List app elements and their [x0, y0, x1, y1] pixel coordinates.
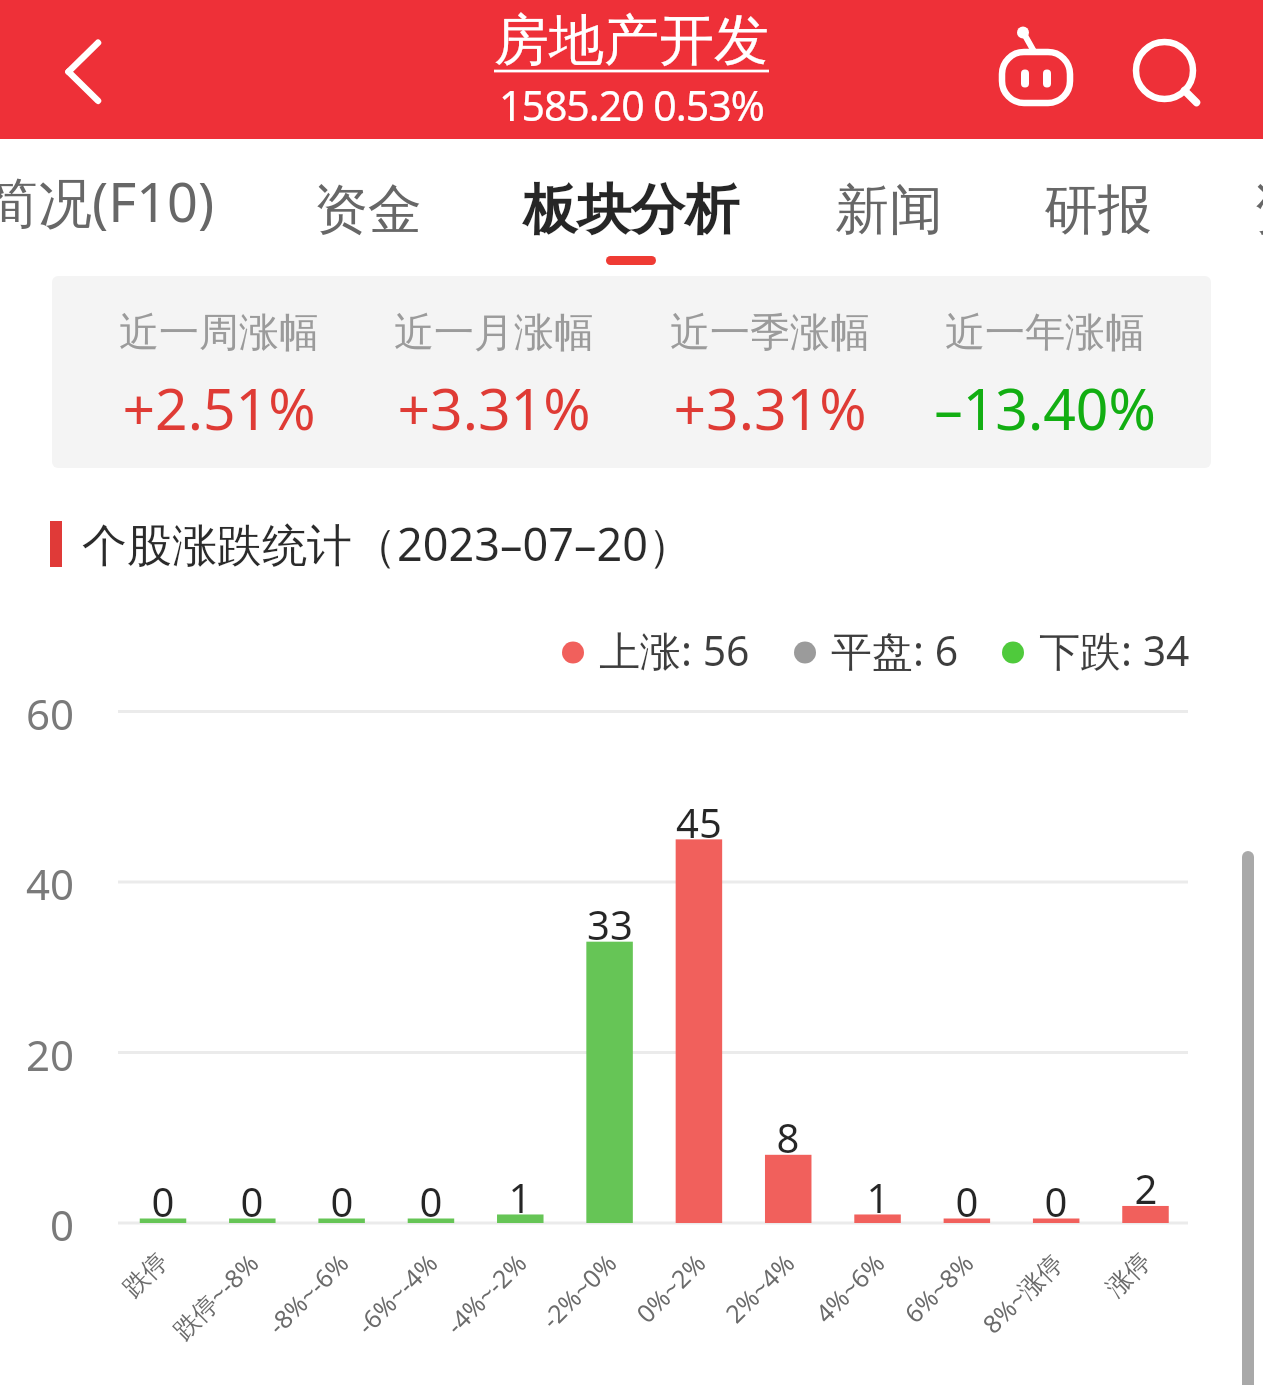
staticText: -8%~-6%	[48, 1246, 355, 1385]
button[interactable]: Back	[24, 17, 128, 121]
staticText: 资	[1253, 176, 1263, 244]
staticText: 20	[0, 1026, 74, 1083]
staticText: 跌停	[0, 1246, 174, 1385]
staticText: -6%~-4%	[137, 1246, 444, 1385]
staticText: 上涨: 56	[599, 622, 750, 678]
button[interactable]: 平盘: 6	[788, 624, 957, 682]
staticText: 板块分析	[523, 176, 739, 244]
staticText: 0	[282, 1174, 402, 1228]
button[interactable]: 研报	[1030, 150, 1166, 276]
staticText: 0	[996, 1174, 1116, 1228]
staticText: +3.31%	[357, 369, 631, 447]
staticText: 新闻	[835, 176, 943, 244]
staticText: 房地产开发	[494, 6, 769, 75]
staticText: 2	[1086, 1161, 1206, 1215]
button[interactable]: 房地产开发	[494, 6, 769, 133]
staticText: 近一季涨幅	[633, 307, 907, 357]
button[interactable]: 资金	[300, 150, 436, 276]
staticText: 8	[728, 1110, 848, 1164]
staticText: 下跌: 34	[1039, 622, 1190, 678]
button[interactable]: 个股涨跌统计（2023–07–20）	[50, 513, 693, 574]
button[interactable]: 近一周涨幅	[82, 276, 356, 468]
staticText: 1585.20 0.53%	[499, 77, 764, 133]
staticText: 简况(F10)	[0, 164, 215, 238]
button[interactable]: 近一年涨幅	[908, 276, 1182, 468]
button[interactable]: 下跌: 34	[996, 624, 1186, 682]
staticText: 涨停	[852, 1246, 1157, 1385]
staticText: 60	[0, 685, 74, 742]
staticText: 0	[907, 1174, 1027, 1228]
staticText: 2%~4%	[494, 1246, 801, 1385]
staticText: 33	[550, 897, 670, 951]
button[interactable]: 资	[1239, 150, 1263, 276]
staticText: 6%~8%	[673, 1246, 980, 1385]
staticText: 0	[0, 1196, 74, 1253]
staticText: 近一月涨幅	[357, 307, 631, 357]
staticText: 40	[0, 855, 74, 912]
staticText: 个股涨跌统计（2023–07–20）	[82, 513, 693, 574]
staticText: 4%~6%	[584, 1246, 891, 1385]
staticText: 45	[639, 795, 759, 849]
button[interactable]: Search	[1115, 22, 1211, 118]
button[interactable]: 板块分析	[509, 150, 753, 276]
staticText: 0	[371, 1174, 491, 1228]
staticText: -4%~-2%	[226, 1246, 533, 1385]
button[interactable]: AI assistant	[985, 22, 1081, 118]
staticText: 1	[818, 1170, 938, 1224]
staticText: +3.31%	[633, 369, 907, 447]
staticText: 0	[103, 1174, 223, 1228]
staticText: 8%~涨停	[762, 1246, 1069, 1385]
staticText: 1	[460, 1170, 580, 1224]
staticText: 跌停~-8%	[0, 1246, 265, 1385]
button[interactable]: 近一季涨幅	[633, 276, 907, 468]
staticText: 研报	[1044, 176, 1152, 244]
staticText: 近一年涨幅	[908, 307, 1182, 357]
staticText: 0%~2%	[405, 1246, 712, 1385]
staticText: 近一周涨幅	[82, 307, 356, 357]
staticText: –13.40%	[908, 369, 1182, 447]
staticText: 平盘: 6	[831, 622, 959, 678]
button[interactable]: 上涨: 56	[556, 624, 751, 682]
button[interactable]: 近一月涨幅	[357, 276, 631, 468]
staticText: +2.51%	[82, 369, 356, 447]
button[interactable]: 新闻	[821, 150, 957, 276]
staticText: 资金	[314, 176, 422, 244]
staticText: -2%~0%	[316, 1246, 623, 1385]
button[interactable]: 简况(F10)	[0, 150, 229, 276]
staticText: 0	[192, 1174, 312, 1228]
